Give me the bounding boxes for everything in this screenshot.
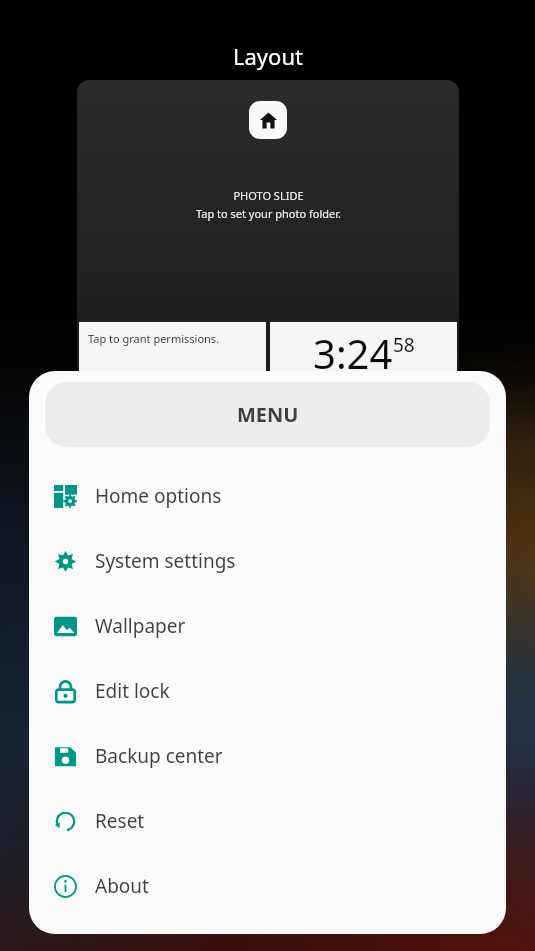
- button[interactable]: Edit lock: [29, 658, 506, 723]
- button[interactable]: Home: [77, 80, 459, 380]
- button[interactable]: Wallpaper: [29, 593, 506, 658]
- button[interactable]: Home options: [29, 463, 506, 528]
- staticText: Wallpaper: [95, 613, 186, 639]
- staticText: Backup center: [95, 743, 223, 769]
- button[interactable]: System settings: [29, 528, 506, 593]
- button[interactable]: MENU: [45, 382, 490, 447]
- staticText: MENU: [237, 401, 299, 428]
- staticText: Tap to set your photo folder.: [196, 206, 341, 221]
- button[interactable]: Reset: [29, 788, 506, 853]
- button[interactable]: Tap to grant permissions.: [79, 322, 266, 380]
- button[interactable]: Home: [249, 101, 287, 139]
- staticText: PHOTO SLIDE: [233, 188, 304, 203]
- staticText: Layout: [233, 41, 303, 71]
- staticText: Tap to grant permissions.: [88, 331, 220, 346]
- button[interactable]: About: [29, 853, 506, 918]
- staticText: Reset: [95, 808, 145, 834]
- staticText: Home options: [95, 483, 222, 509]
- staticText: Edit lock: [95, 678, 170, 704]
- staticText: System settings: [95, 548, 236, 574]
- button[interactable]: 3:24: [270, 322, 457, 380]
- staticText: About: [95, 873, 149, 899]
- staticText: 58: [393, 332, 415, 358]
- button[interactable]: Backup center: [29, 723, 506, 788]
- staticText: 3:24: [313, 326, 393, 380]
